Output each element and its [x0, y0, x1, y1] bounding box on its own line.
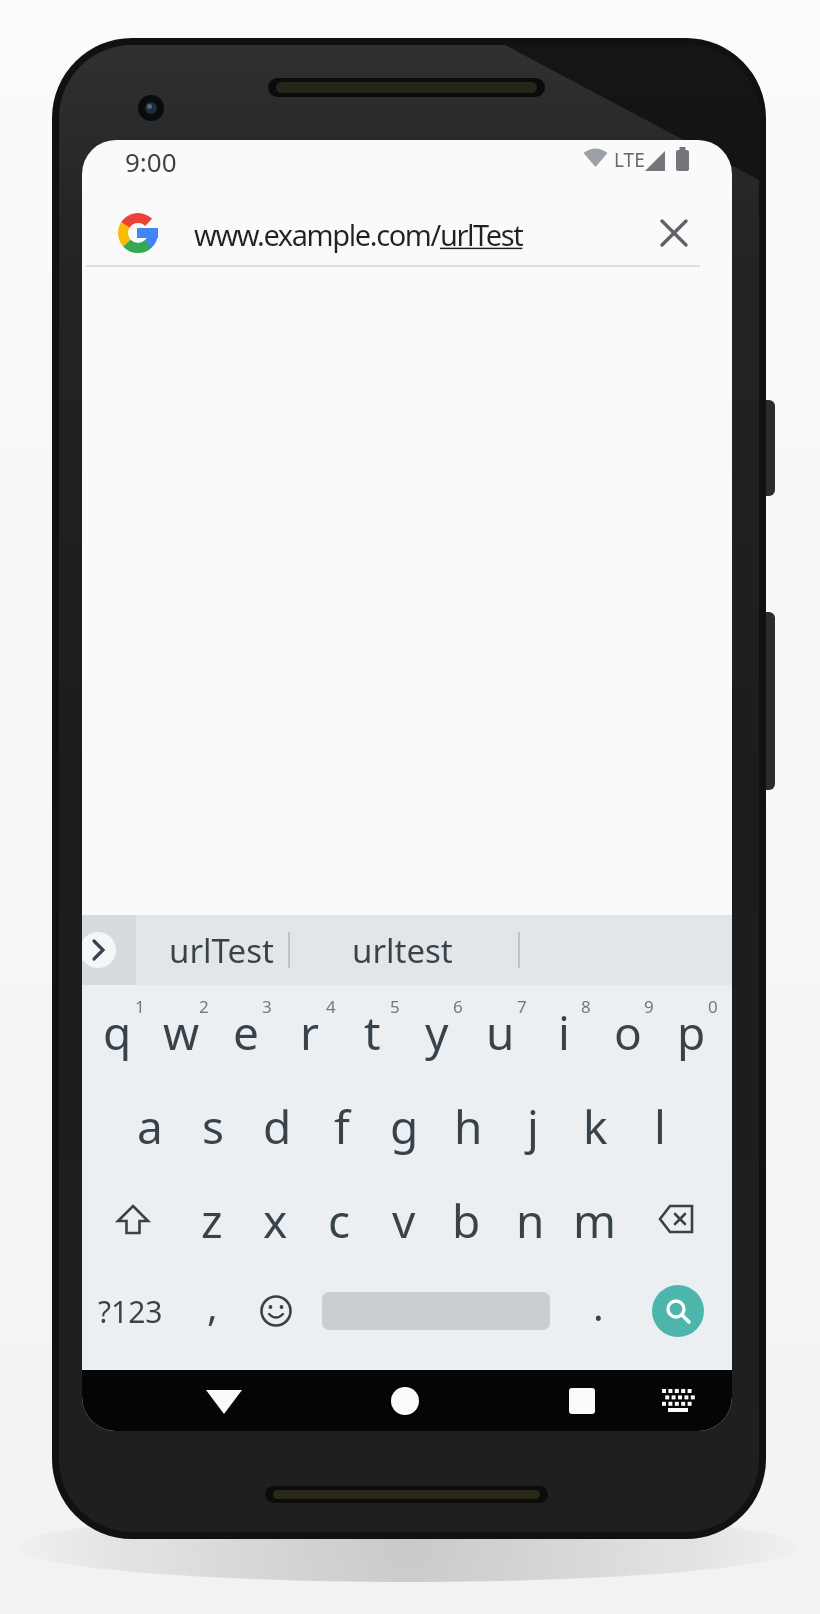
staticText: 6	[453, 995, 463, 1018]
staticText: o	[614, 1001, 642, 1064]
staticText: u	[486, 1001, 515, 1064]
staticText: a	[137, 1095, 163, 1158]
staticText: k	[583, 1095, 608, 1158]
staticText: w	[163, 1001, 200, 1064]
staticText: m	[573, 1189, 617, 1252]
staticText: e	[233, 1001, 259, 1064]
staticText: ?123	[98, 1291, 163, 1332]
staticText: 7	[517, 995, 527, 1018]
staticText: p	[677, 1001, 706, 1064]
staticText: 5	[390, 995, 400, 1018]
staticText: d	[263, 1095, 292, 1158]
staticText: y	[425, 1001, 449, 1064]
staticText: 9	[644, 995, 654, 1018]
staticText: urlTest	[169, 928, 274, 973]
staticText: s	[202, 1095, 225, 1158]
staticText: r	[300, 1001, 319, 1064]
staticText: v	[392, 1189, 416, 1252]
staticText: z	[201, 1189, 223, 1252]
staticText: j	[527, 1095, 539, 1158]
staticText: 8	[581, 995, 591, 1018]
staticText: l	[654, 1095, 666, 1158]
staticText: .	[593, 1278, 604, 1332]
staticText: t	[364, 1001, 381, 1064]
staticText: x	[263, 1189, 288, 1252]
staticText: ,	[207, 1278, 218, 1332]
staticText: 4	[326, 995, 336, 1018]
staticText: LTE	[614, 147, 645, 173]
staticText: www.example.com/urlTest	[194, 215, 523, 254]
staticText: 3	[262, 995, 272, 1018]
staticText: f	[334, 1095, 350, 1158]
staticText: h	[454, 1095, 483, 1158]
staticText: q	[103, 1001, 132, 1064]
staticText: 9:00	[125, 144, 177, 179]
staticText: 2	[199, 995, 209, 1018]
staticText: urltest	[352, 928, 453, 973]
staticText: g	[390, 1095, 419, 1158]
staticText: 1	[135, 995, 145, 1018]
staticText: n	[516, 1189, 545, 1252]
staticText: 0	[708, 995, 718, 1018]
staticText: c	[328, 1189, 351, 1252]
staticText: i	[558, 1001, 570, 1064]
staticText: b	[452, 1189, 481, 1252]
